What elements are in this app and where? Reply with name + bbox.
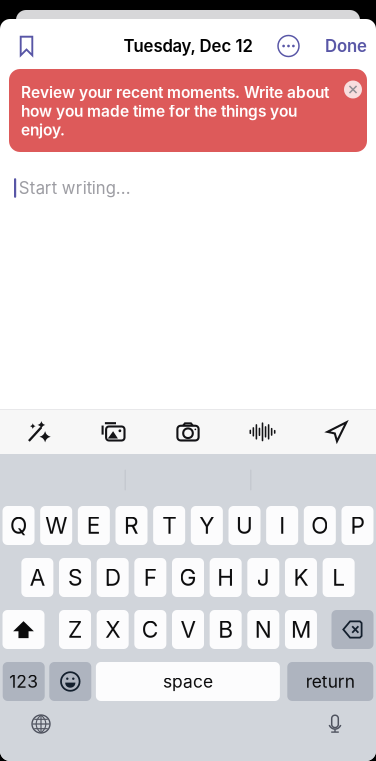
button[interactable]: Suggestions bbox=[13, 410, 65, 454]
staticText: W bbox=[45, 512, 67, 539]
staticText: C bbox=[142, 616, 159, 643]
staticText: T bbox=[162, 512, 176, 539]
button[interactable]: Shift bbox=[2, 610, 44, 649]
staticText: Tuesday, Dec 12 bbox=[123, 36, 252, 56]
button[interactable]: Y bbox=[191, 506, 223, 545]
button[interactable]: S bbox=[59, 558, 91, 597]
button[interactable]: return bbox=[287, 662, 373, 701]
button[interactable]: L bbox=[323, 558, 355, 597]
button[interactable]: Bookmark bbox=[13, 33, 40, 59]
staticText: I bbox=[279, 512, 285, 539]
button[interactable]: G bbox=[172, 558, 204, 597]
button[interactable]: Z bbox=[59, 610, 91, 649]
button[interactable]: B bbox=[210, 610, 242, 649]
button[interactable]: Location bbox=[311, 410, 363, 454]
button[interactable]: Audio bbox=[236, 410, 288, 454]
staticText: F bbox=[144, 564, 157, 591]
button[interactable]: Next keyboard bbox=[20, 707, 62, 741]
button[interactable]: M bbox=[285, 610, 317, 649]
button[interactable]: R bbox=[115, 506, 147, 545]
button[interactable]: Done bbox=[323, 33, 369, 59]
button[interactable]: P bbox=[341, 506, 373, 545]
staticText: Start writing... bbox=[19, 178, 131, 198]
button[interactable]: E bbox=[78, 506, 110, 545]
staticText: U bbox=[236, 512, 253, 539]
button[interactable]: D bbox=[97, 558, 129, 597]
staticText: X bbox=[105, 616, 120, 643]
button[interactable]: X bbox=[97, 610, 129, 649]
staticText: O bbox=[311, 512, 328, 539]
button[interactable]: A bbox=[21, 558, 53, 597]
staticText: J bbox=[257, 564, 270, 591]
staticText: return bbox=[306, 671, 355, 692]
button[interactable]: Emoji bbox=[49, 662, 91, 701]
staticText: L bbox=[332, 564, 345, 591]
button[interactable]: Dismiss suggestion bbox=[344, 80, 362, 98]
staticText: N bbox=[255, 616, 272, 643]
staticText: Done bbox=[325, 36, 367, 56]
button[interactable]: W bbox=[40, 506, 72, 545]
staticText: Y bbox=[199, 512, 214, 539]
staticText: B bbox=[218, 616, 233, 643]
staticText: H bbox=[217, 564, 234, 591]
button[interactable]: N bbox=[247, 610, 279, 649]
staticText: G bbox=[179, 564, 196, 591]
button[interactable]: H bbox=[210, 558, 242, 597]
button[interactable]: I bbox=[266, 506, 298, 545]
button[interactable]: V bbox=[172, 610, 204, 649]
button[interactable]: C bbox=[134, 610, 166, 649]
button[interactable]: Camera bbox=[162, 410, 214, 454]
staticText: space bbox=[163, 671, 213, 692]
staticText: D bbox=[105, 564, 121, 591]
staticText: M bbox=[291, 616, 311, 643]
staticText: V bbox=[180, 616, 195, 643]
button[interactable]: Delete bbox=[331, 610, 373, 649]
button[interactable]: J bbox=[247, 558, 279, 597]
staticText: K bbox=[293, 564, 308, 591]
button[interactable]: T bbox=[153, 506, 185, 545]
staticText: P bbox=[350, 512, 364, 539]
button[interactable]: O bbox=[304, 506, 336, 545]
button[interactable]: Photos bbox=[87, 410, 139, 454]
staticText: Q bbox=[10, 512, 27, 539]
staticText: Z bbox=[68, 616, 82, 643]
button[interactable]: space bbox=[96, 662, 280, 701]
button[interactable]: More options bbox=[276, 33, 301, 59]
staticText: Review your recent moments. Write about … bbox=[21, 83, 329, 139]
staticText: E bbox=[87, 512, 101, 539]
button[interactable]: F bbox=[134, 558, 166, 597]
button[interactable]: Dictate bbox=[314, 707, 356, 741]
button[interactable]: Q bbox=[2, 506, 34, 545]
staticText: S bbox=[68, 564, 82, 591]
staticText: 123 bbox=[9, 671, 38, 692]
staticText: R bbox=[124, 512, 139, 539]
staticText: A bbox=[30, 564, 45, 591]
button[interactable]: K bbox=[285, 558, 317, 597]
button[interactable]: U bbox=[228, 506, 260, 545]
button[interactable]: 123 bbox=[3, 662, 45, 701]
